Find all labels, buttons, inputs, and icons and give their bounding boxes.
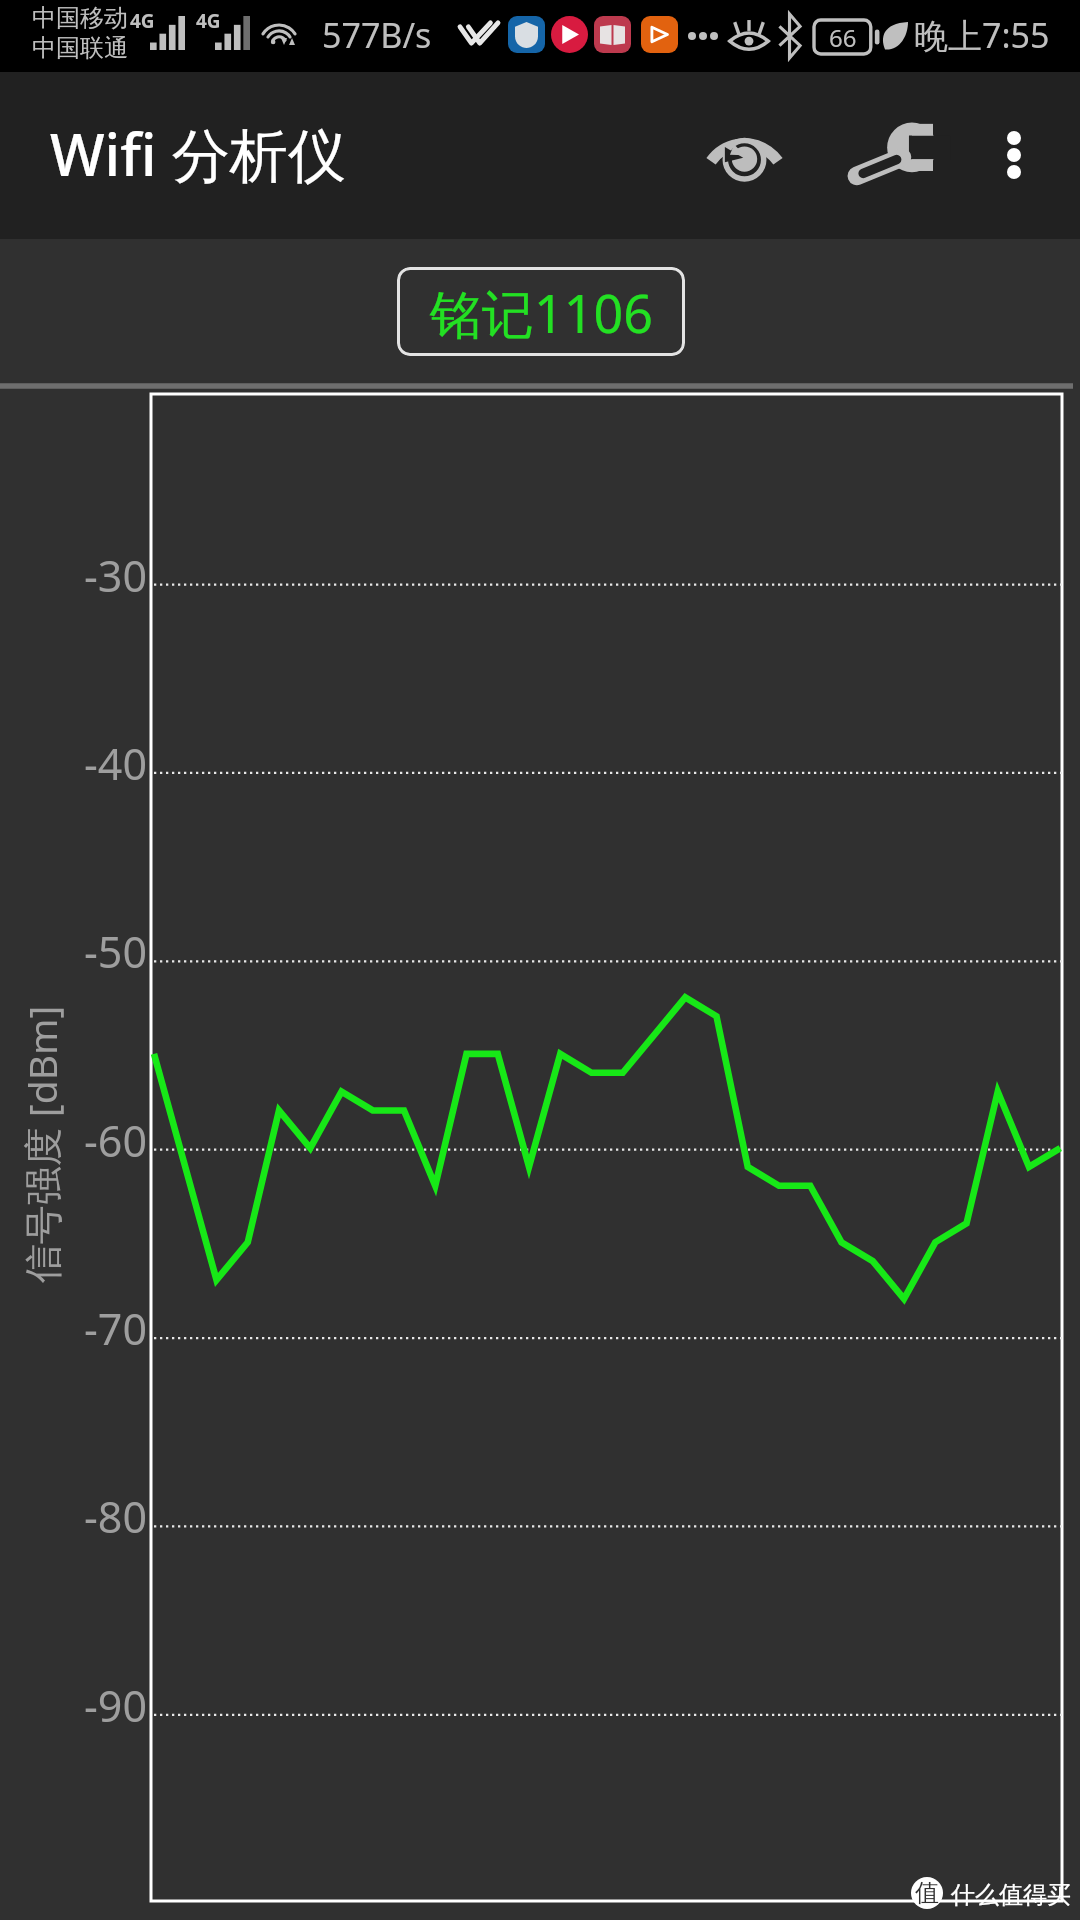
- button[interactable]: More options: [974, 116, 1054, 194]
- staticText: 信号强度 [dBm]: [14, 994, 67, 1294]
- staticText: Wifi 分析仪: [50, 114, 346, 193]
- staticText: 晚上7:55: [914, 12, 1050, 58]
- staticText: -70: [61, 1299, 147, 1358]
- staticText: 值: [915, 1878, 939, 1908]
- staticText: 4G: [130, 8, 155, 34]
- button[interactable]: 铭记1106: [397, 267, 685, 356]
- staticText: -90: [61, 1676, 147, 1735]
- staticText: 中国移动: [32, 3, 128, 33]
- staticText: -80: [61, 1487, 147, 1546]
- staticText: 577B/s: [322, 12, 432, 58]
- staticText: -60: [61, 1111, 147, 1170]
- button[interactable]: Settings: [832, 112, 947, 194]
- staticText: -50: [61, 922, 147, 981]
- staticText: 中国联通: [32, 33, 128, 63]
- button[interactable]: Toggle view: [684, 116, 804, 194]
- staticText: -30: [61, 546, 147, 605]
- staticText: 铭记1106: [430, 277, 653, 348]
- staticText: 66: [829, 21, 857, 54]
- staticText: 什么值得买: [951, 1880, 1071, 1910]
- staticText: -40: [61, 734, 147, 793]
- staticText: 4G: [196, 8, 221, 34]
